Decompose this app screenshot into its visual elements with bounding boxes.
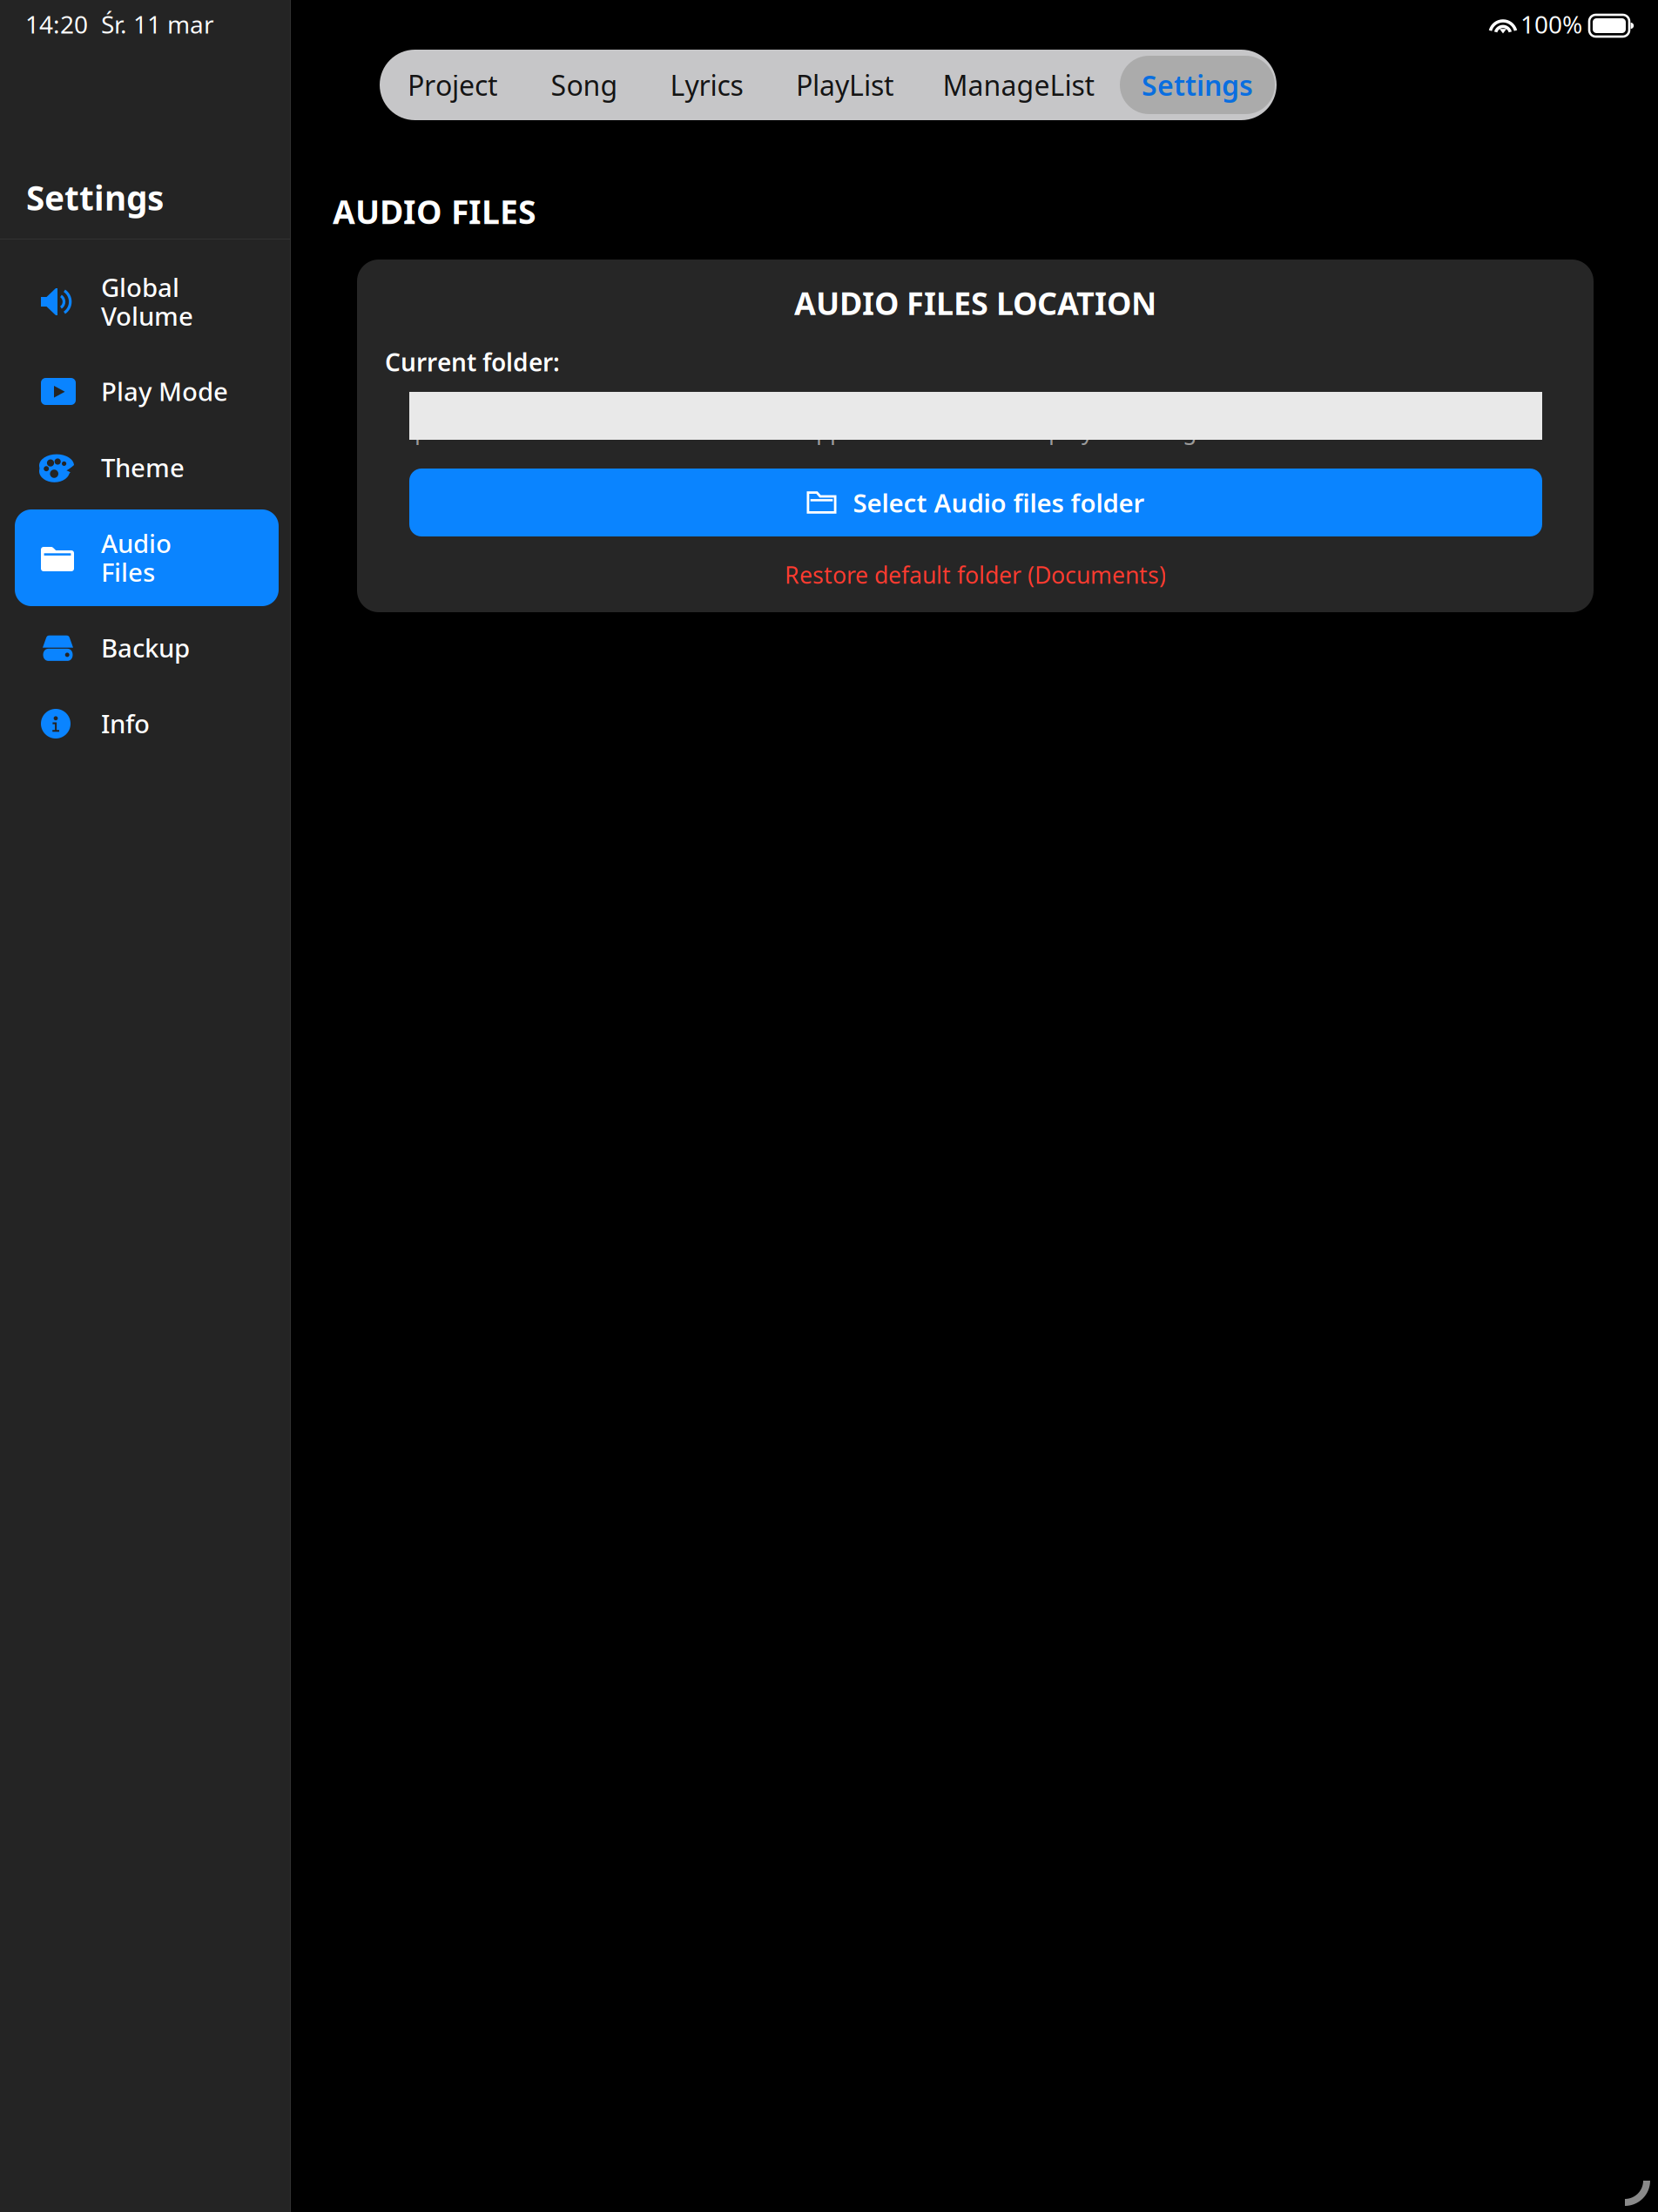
button[interactable]: Lyrics <box>643 50 771 120</box>
button[interactable]: Global <box>15 253 279 350</box>
button[interactable]: Theme <box>15 433 279 502</box>
staticText: Select Audio files folder <box>853 486 1145 519</box>
button[interactable]: Song <box>526 50 643 120</box>
button[interactable]: Restore default folder (Documents) <box>357 556 1594 594</box>
button[interactable]: ManageList <box>920 50 1118 120</box>
staticText: Settings <box>1142 66 1253 103</box>
staticText: private var mobile Containers Data Appli… <box>414 415 1208 445</box>
button[interactable]: PlayList <box>771 50 920 120</box>
button[interactable]: Play Mode <box>15 357 279 426</box>
staticText: Files <box>101 555 155 589</box>
staticText: Śr. 11 mar <box>101 8 214 40</box>
staticText: AUDIO FILES <box>333 190 536 233</box>
staticText: 14:20 <box>25 8 88 40</box>
staticText: Volume <box>101 299 193 333</box>
staticText: Audio <box>101 526 172 560</box>
button[interactable]: Audio <box>15 509 279 606</box>
button[interactable]: Select Audio files folder <box>409 469 1542 536</box>
button[interactable]: Settings <box>1118 50 1277 120</box>
staticText: Play Mode <box>101 374 228 408</box>
staticText: Lyrics <box>670 66 743 103</box>
staticText: ManageList <box>943 66 1095 103</box>
staticText: Current folder: <box>385 346 560 378</box>
button[interactable]: Project <box>380 50 526 120</box>
staticText: Restore default folder (Documents) <box>785 559 1166 590</box>
staticText: Song <box>551 66 618 103</box>
staticText: PlayList <box>796 66 894 103</box>
staticText: Theme <box>101 450 185 484</box>
staticText: Settings <box>26 175 164 220</box>
staticText: Info <box>101 706 150 740</box>
staticText: AUDIO FILES LOCATION <box>794 282 1156 324</box>
button[interactable]: Backup <box>15 613 279 683</box>
staticText: Global <box>101 270 179 304</box>
staticText: 100% <box>1520 8 1582 40</box>
staticText: Project <box>408 66 498 103</box>
button[interactable]: Info <box>15 689 279 759</box>
staticText: Backup <box>101 631 190 665</box>
